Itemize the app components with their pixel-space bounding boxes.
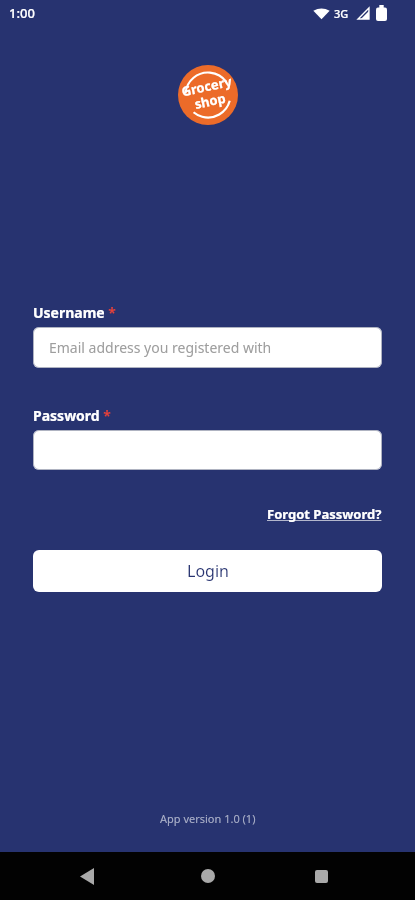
button[interactable] (201, 869, 215, 883)
button[interactable]: Email address you registered with (33, 327, 382, 368)
button[interactable]: Forgot Password? (267, 505, 382, 523)
staticText: Grocery (180, 72, 233, 100)
button[interactable] (315, 870, 328, 883)
button[interactable] (33, 430, 382, 470)
staticText: Password * (33, 406, 111, 425)
button[interactable] (80, 868, 94, 885)
staticText: App version 1.0 (1) (160, 811, 256, 826)
staticText: shop (193, 89, 228, 113)
staticText: Login (187, 560, 229, 582)
button[interactable]: Login (33, 550, 382, 592)
staticText: 1:00 (9, 4, 35, 22)
staticText: 3G (334, 6, 349, 21)
staticText: Username * (33, 303, 116, 322)
staticText: Email address you registered with (49, 338, 272, 357)
